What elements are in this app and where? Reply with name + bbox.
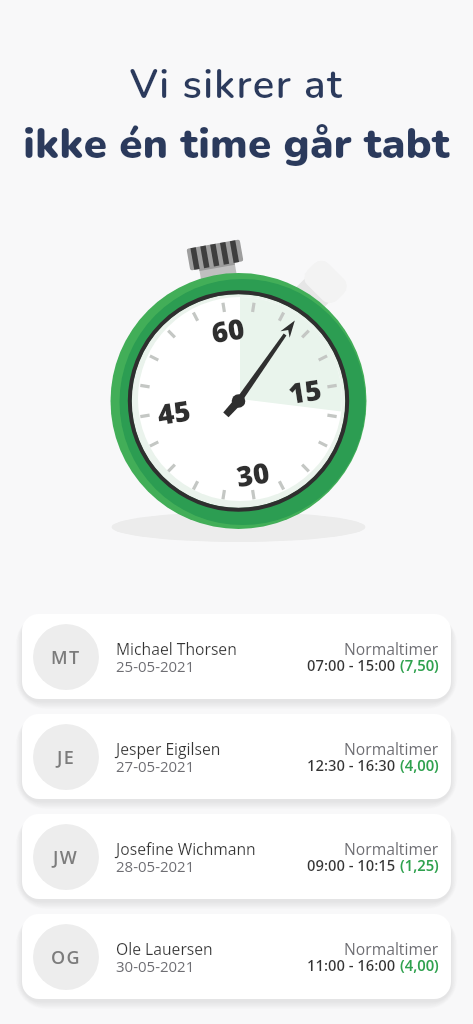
staticText: 09:00 - 10:15 xyxy=(307,855,400,875)
staticText: 28-05-2021 xyxy=(116,856,195,876)
staticText: JW xyxy=(53,845,79,870)
staticText: 12:30 - 16:30 xyxy=(307,755,400,775)
staticText: 25-05-2021 xyxy=(116,656,195,676)
staticText: MT xyxy=(51,645,81,670)
staticText: 60 xyxy=(208,308,246,347)
staticText: Jesper Eigilsen xyxy=(116,738,221,759)
staticText: Normaltimer xyxy=(344,638,439,659)
button[interactable]: MT xyxy=(22,614,451,699)
staticText: 11:00 - 16:00 xyxy=(307,955,400,975)
staticText: Ole Lauersen xyxy=(116,938,213,959)
staticText: 30 xyxy=(233,452,271,491)
staticText: Normaltimer xyxy=(344,838,439,859)
staticText: Normaltimer xyxy=(344,738,439,759)
staticText: Michael Thorsen xyxy=(116,638,237,659)
staticText: (4,00) xyxy=(400,955,439,975)
staticText: 27-05-2021 xyxy=(116,756,195,776)
staticText: Normaltimer xyxy=(344,938,439,959)
staticText: Vi sikrer at xyxy=(0,58,473,113)
staticText: 30-05-2021 xyxy=(116,956,195,976)
staticText: (7,50) xyxy=(400,655,439,675)
staticText: 15 xyxy=(285,369,323,408)
staticText: 07:00 - 15:00 xyxy=(307,655,400,675)
staticText: OG xyxy=(51,945,82,970)
button[interactable]: JW xyxy=(22,814,451,899)
staticText: (4,00) xyxy=(400,755,439,775)
staticText: ikke én time går tabt xyxy=(0,116,473,173)
button[interactable]: OG xyxy=(22,914,451,999)
staticText: JE xyxy=(57,745,76,770)
button[interactable]: JE xyxy=(22,714,451,799)
staticText: Josefine Wichmann xyxy=(116,838,256,859)
staticText: (1,25) xyxy=(400,855,439,875)
staticText: 45 xyxy=(154,390,192,429)
